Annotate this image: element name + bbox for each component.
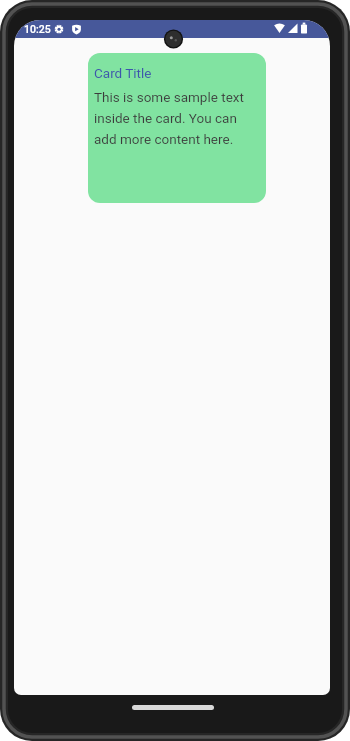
button[interactable]: Card Title [88,53,266,203]
staticText: 10:25 [24,23,51,35]
staticText: This is some sample text inside the card… [94,89,244,147]
staticText: Card Title [94,65,152,81]
